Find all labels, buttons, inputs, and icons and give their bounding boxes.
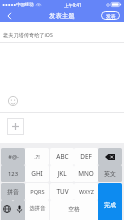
button[interactable]: 空格	[50, 200, 98, 220]
button[interactable]: 选拼音	[25, 200, 49, 220]
button[interactable]: DEF	[74, 148, 98, 165]
button[interactable]: TUV	[50, 183, 74, 200]
staticText: 发表	[106, 13, 116, 19]
staticText: 上午9:41	[64, 2, 82, 8]
staticText: 完成	[104, 201, 116, 209]
staticText: PQRS	[30, 188, 45, 196]
staticText: TUV	[56, 187, 69, 196]
button[interactable]: WXYZ	[74, 183, 98, 200]
button[interactable]: Emoji	[8, 96, 18, 106]
staticText: ABC	[56, 152, 69, 161]
button[interactable]: 老夫刀塔传奇给了iOS	[0, 22, 124, 43]
staticText: 英文	[104, 170, 116, 178]
button[interactable]: .?!	[25, 148, 49, 165]
staticText: JKL	[57, 169, 67, 178]
button[interactable]: ABC	[50, 148, 74, 165]
button[interactable]: 拼音	[1, 183, 25, 200]
staticText: GHI	[31, 169, 43, 178]
button[interactable]: MNO	[74, 165, 98, 182]
staticText: 123	[8, 170, 18, 178]
staticText: 老夫刀塔传奇给了iOS	[3, 31, 53, 38]
button[interactable]: 123	[1, 165, 25, 182]
staticText: #@-	[8, 153, 19, 161]
button[interactable]: Add photo	[7, 118, 24, 135]
staticText: 中国移动	[16, 2, 34, 8]
staticText: 空格	[68, 205, 80, 212]
button[interactable]: GHI	[25, 165, 49, 182]
button[interactable]: Change keyboard	[1, 200, 13, 220]
staticText: 发表主题	[49, 12, 75, 20]
button[interactable]: 发表	[101, 11, 120, 20]
button[interactable]: 完成	[98, 183, 122, 220]
button[interactable]: #@-	[1, 148, 25, 165]
button[interactable]: JKL	[50, 165, 74, 182]
staticText: WXYZ	[79, 188, 94, 196]
staticText: 拼音	[7, 188, 19, 196]
button[interactable]: PQRS	[25, 183, 49, 200]
staticText: 选拼音	[29, 205, 46, 212]
button[interactable]: Back	[0, 9, 18, 22]
button[interactable]: Voice input	[13, 200, 25, 220]
staticText: .?!	[34, 153, 40, 161]
button[interactable]: 英文	[98, 165, 122, 182]
button[interactable]: Backspace	[98, 148, 122, 165]
staticText: MNO	[78, 169, 94, 178]
staticText: DEF	[80, 152, 92, 161]
